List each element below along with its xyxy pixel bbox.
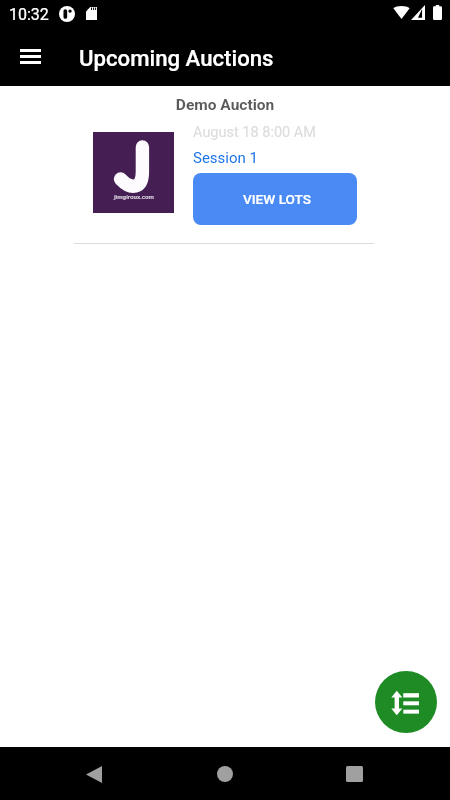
button[interactable]: Session 1 [193, 149, 258, 167]
button[interactable]: Recent apps [330, 750, 378, 798]
staticText: jimgiroux.com [114, 193, 154, 200]
staticText: VIEW LOTS [243, 191, 312, 207]
button[interactable]: Home [201, 750, 249, 798]
staticText: 10:32 [9, 5, 49, 24]
staticText: Demo Auction [0, 96, 450, 114]
button[interactable]: Back [70, 750, 118, 798]
button[interactable]: Sort auctions [375, 671, 437, 733]
button[interactable]: VIEW LOTS [193, 173, 357, 225]
staticText: Upcoming Auctions [79, 45, 274, 71]
button[interactable]: Open navigation menu [4, 32, 56, 84]
staticText: Session 1 [193, 149, 258, 167]
staticText: August 18 8:00 AM [193, 124, 316, 141]
